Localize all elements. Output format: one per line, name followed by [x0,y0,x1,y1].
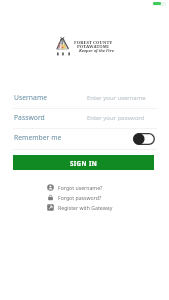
staticText: Enter your password [87,114,145,122]
staticText: Remember me [14,133,62,142]
staticText: SIGN IN [70,159,98,167]
button[interactable]: Remember me toggle [133,133,155,145]
staticText: Keeper of the Fire [79,48,114,53]
button[interactable]: Forgot password? [47,192,102,202]
button[interactable]: SIGN IN [13,155,154,170]
staticText: Username [14,93,48,102]
staticText: Enter your username [87,94,146,102]
staticText: POTAWATOMI [77,43,109,49]
staticText: Password [14,113,45,122]
button[interactable]: Register with Gateway [47,202,113,212]
button[interactable]: Password [14,108,156,128]
staticText: Forgot username? [58,184,103,191]
staticText: Forgot password? [58,194,102,201]
button[interactable]: Forgot username? [47,182,103,192]
staticText: Register with Gateway [58,204,113,211]
staticText: FOREST COUNTY [74,39,113,45]
button[interactable]: Username [14,88,156,108]
